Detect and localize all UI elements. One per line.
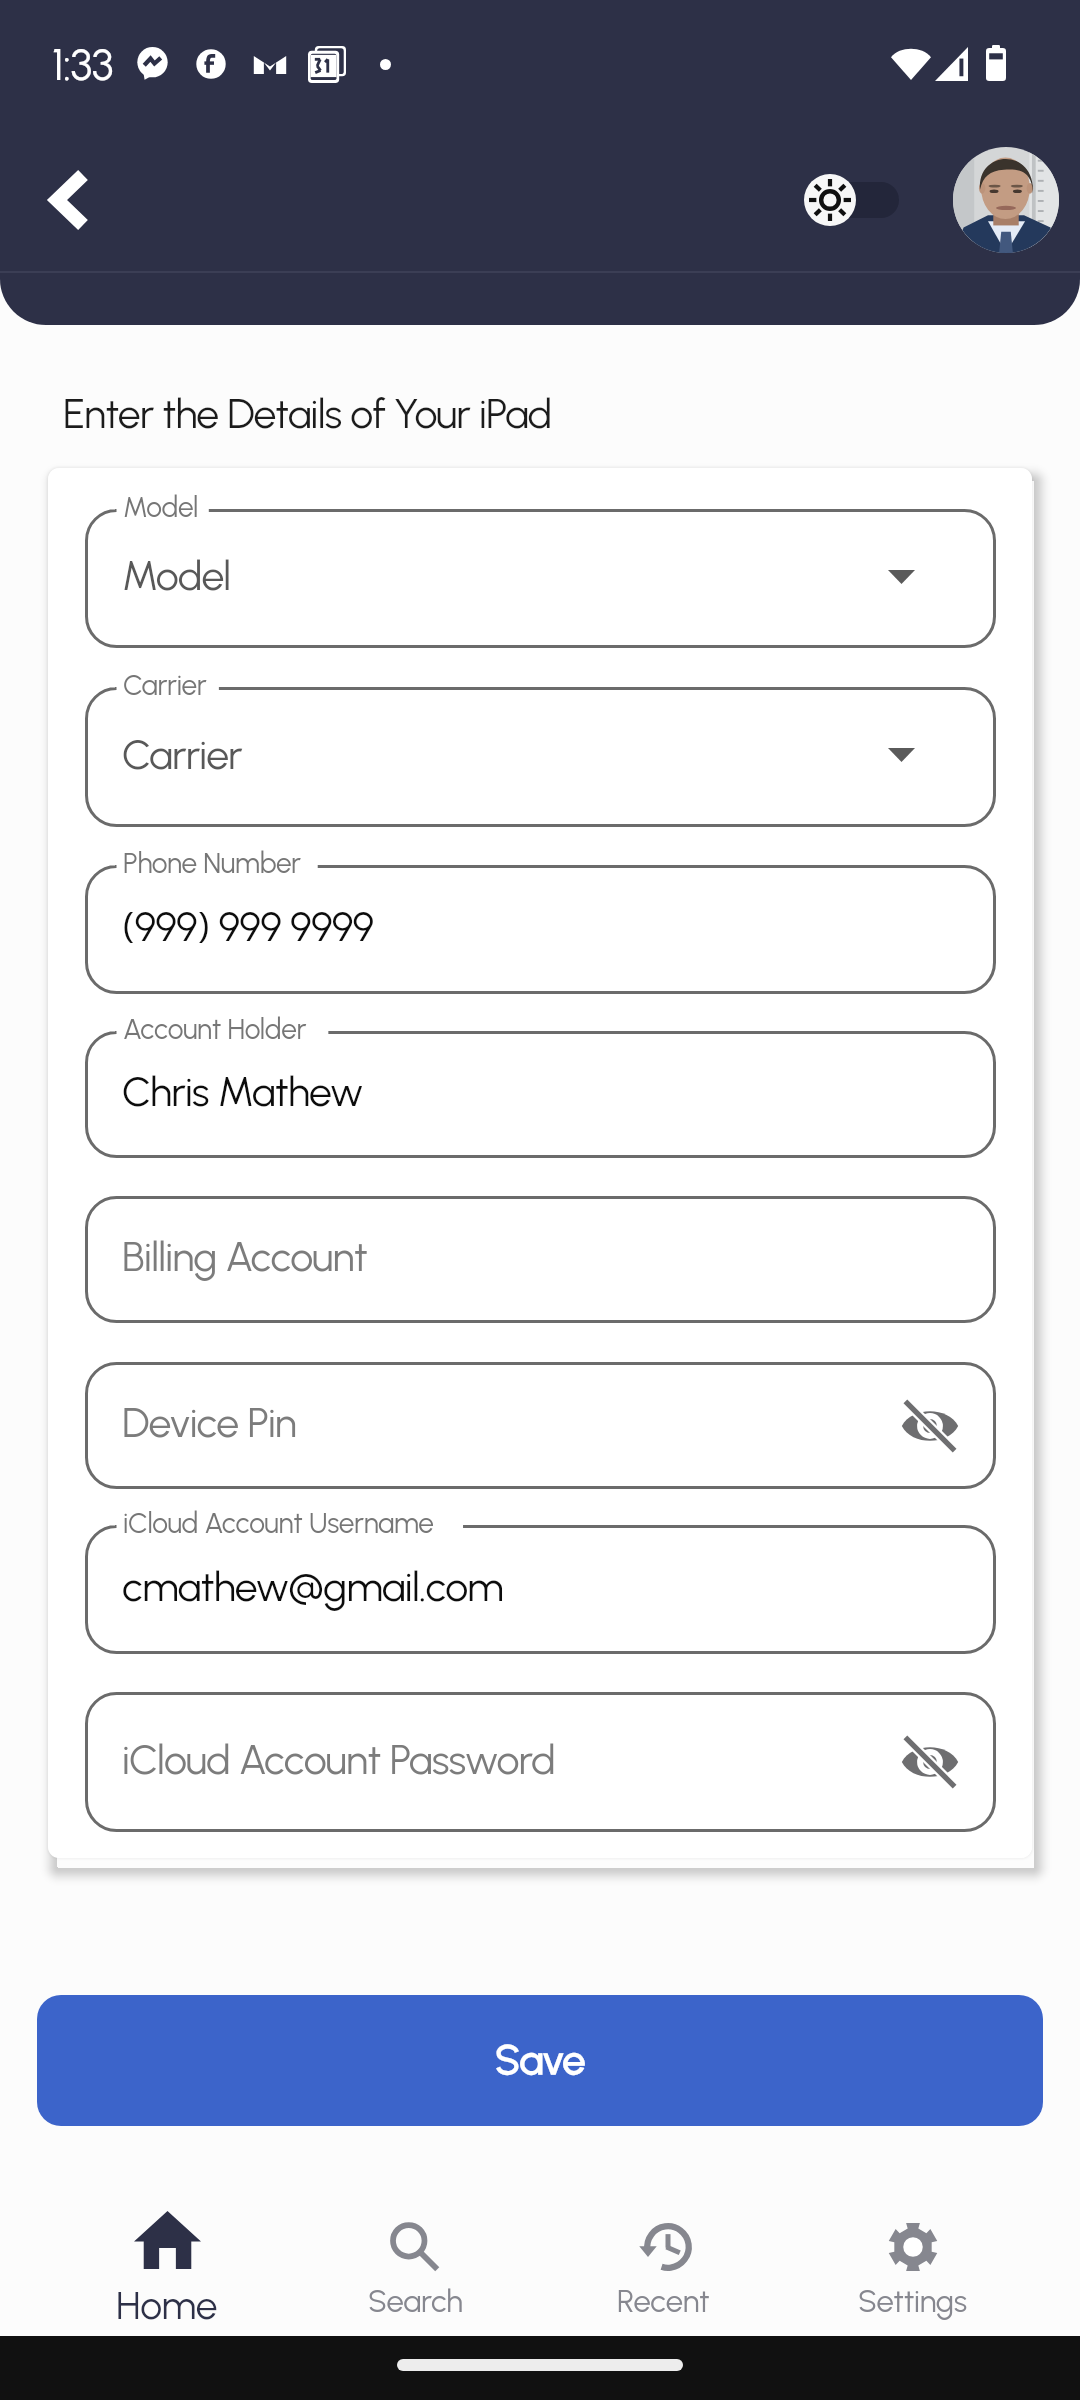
staticText: Save: [495, 2035, 586, 2084]
button[interactable]: Toggle dark mode: [795, 164, 909, 236]
staticText: Phone Number: [123, 846, 301, 880]
staticText: Account Holder: [123, 1012, 307, 1046]
button[interactable]: iCloud Account Username: [85, 1525, 996, 1654]
button[interactable]: Home: [43, 2180, 291, 2336]
button[interactable]: Recent: [539, 2180, 788, 2336]
button[interactable]: Account Holder: [85, 1031, 996, 1158]
button[interactable]: Device Pin: [85, 1362, 996, 1489]
button[interactable]: Search: [291, 2180, 539, 2336]
staticText: Chris Mathew: [122, 1067, 363, 1116]
staticText: Carrier: [122, 730, 242, 779]
button[interactable]: Open Carrier list: [857, 711, 945, 799]
button[interactable]: Billing Account: [85, 1196, 996, 1323]
button[interactable]: Phone Number: [85, 865, 996, 994]
staticText: Enter the Details of Your iPad: [63, 389, 552, 438]
staticText: 1:33: [52, 38, 113, 91]
button[interactable]: Back: [22, 152, 118, 248]
button[interactable]: Model: [85, 509, 996, 648]
button[interactable]: Show password: [882, 1378, 978, 1474]
staticText: Home: [116, 2282, 218, 2329]
staticText: cmathew@gmail.com: [122, 1562, 503, 1611]
staticText: (999) 999 9999: [122, 902, 374, 951]
staticText: Model: [122, 551, 231, 600]
staticText: iCloud Account Username: [123, 1506, 434, 1540]
staticText: Billing Account: [122, 1232, 368, 1281]
staticText: iCloud Account Password: [122, 1735, 556, 1784]
staticText: Settings: [858, 2283, 967, 2320]
staticText: Device Pin: [122, 1398, 297, 1447]
button[interactable]: Carrier: [85, 687, 996, 827]
button[interactable]: Show password: [882, 1714, 978, 1810]
button[interactable]: iCloud Account Password: [85, 1692, 996, 1832]
button[interactable]: Profile: [953, 147, 1059, 253]
staticText: Model: [123, 490, 199, 524]
staticText: Carrier: [123, 668, 207, 702]
button[interactable]: Settings: [788, 2180, 1037, 2336]
staticText: Recent: [617, 2283, 710, 2320]
staticText: Search: [368, 2283, 463, 2320]
button[interactable]: Open Model list: [857, 533, 945, 621]
button[interactable]: Save: [37, 1995, 1043, 2126]
